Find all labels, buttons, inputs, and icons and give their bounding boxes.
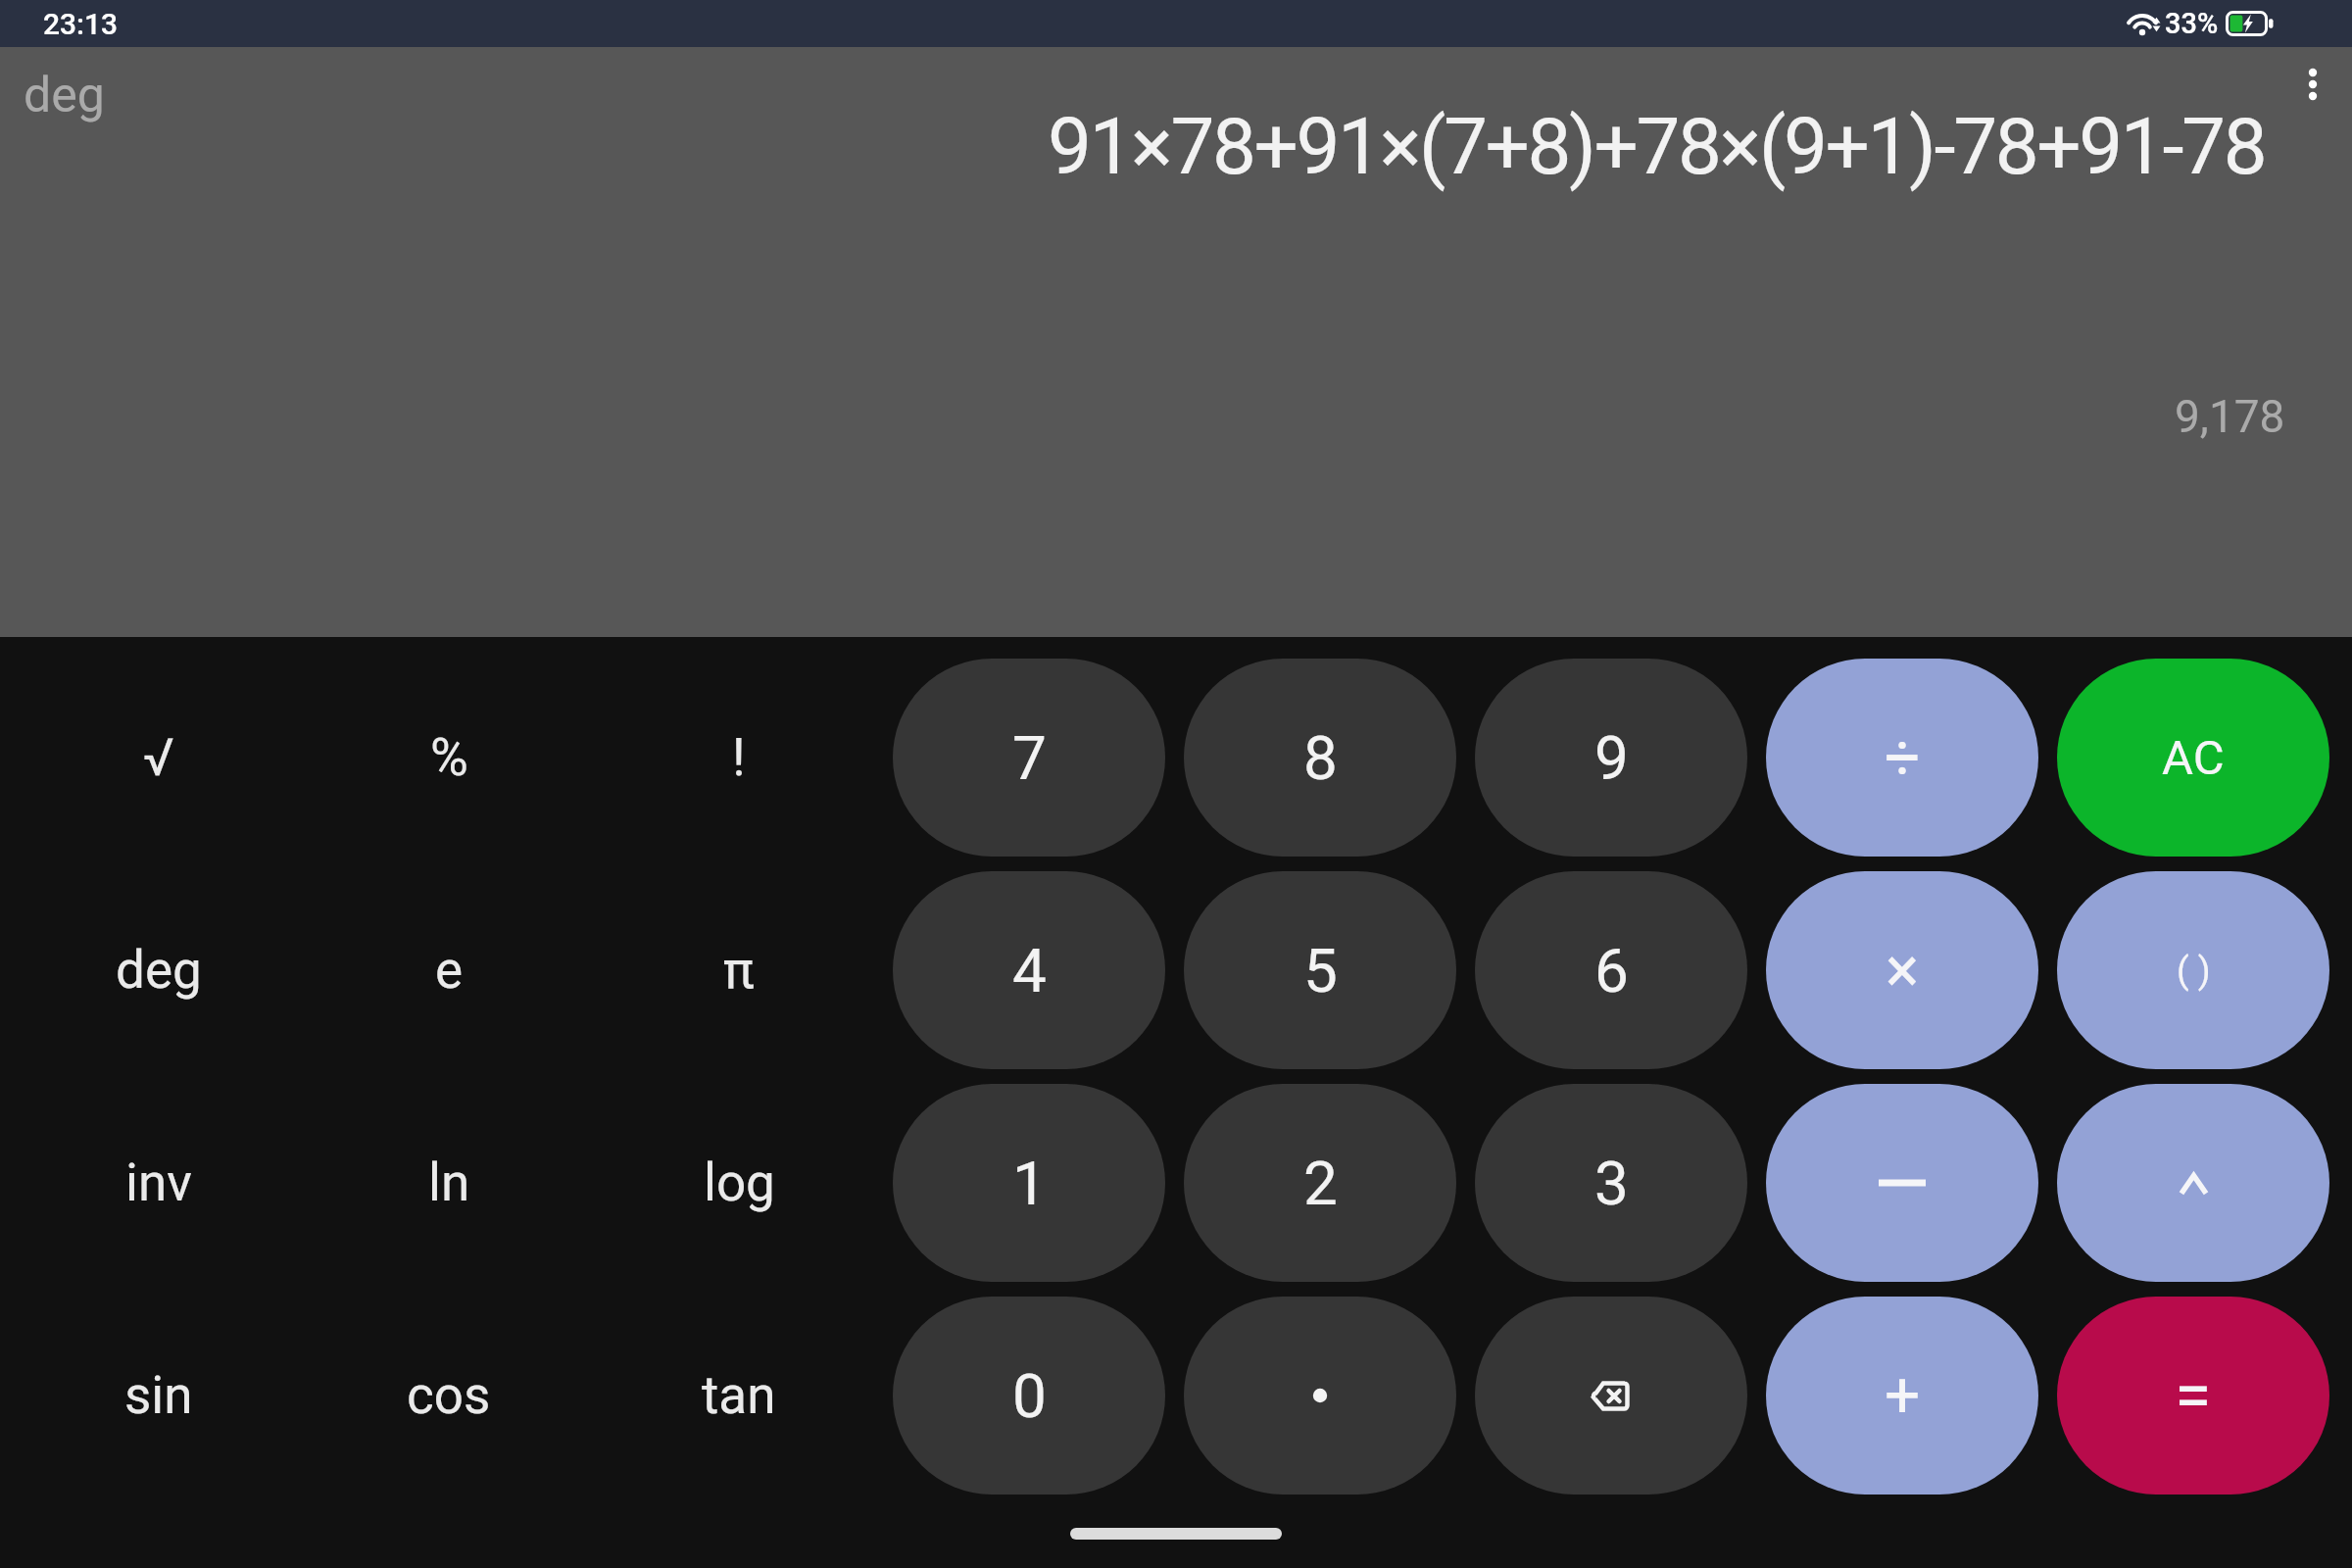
button[interactable]: × xyxy=(1766,871,2038,1069)
button[interactable]: ln xyxy=(304,1076,594,1289)
button[interactable]: = xyxy=(2057,1297,2329,1494)
button[interactable]: 9 xyxy=(1475,659,1747,857)
button[interactable]: AC xyxy=(2057,659,2329,857)
staticText: × xyxy=(1886,934,1920,1007)
staticText: inv xyxy=(125,1152,192,1213)
button[interactable]: cos xyxy=(304,1289,594,1501)
button[interactable]: 7 xyxy=(893,659,1165,857)
button[interactable]: % xyxy=(304,651,594,863)
button[interactable]: e xyxy=(304,863,594,1076)
staticText: deg xyxy=(24,67,105,124)
button[interactable]: 3 xyxy=(1475,1084,1747,1282)
staticText: 3 xyxy=(1594,1148,1629,1219)
staticText: 33% xyxy=(2165,7,2219,40)
staticText: ! xyxy=(732,727,746,788)
staticText: 1 xyxy=(1012,1148,1047,1219)
button[interactable]: 2 xyxy=(1184,1084,1456,1282)
button[interactable]: 8 xyxy=(1184,659,1456,857)
button[interactable]: ( ) xyxy=(2057,871,2329,1069)
staticText: 6 xyxy=(1594,935,1629,1006)
staticText: ln xyxy=(428,1152,470,1213)
button[interactable]: π xyxy=(594,863,884,1076)
button[interactable]: inv xyxy=(14,1076,304,1289)
button[interactable]: 0 xyxy=(893,1297,1165,1494)
button[interactable]: tan xyxy=(594,1289,884,1501)
staticText: 23:13 xyxy=(43,7,119,41)
button[interactable] xyxy=(2057,1084,2329,1282)
button[interactable]: ÷ xyxy=(1766,659,2038,857)
staticText: cos xyxy=(407,1365,491,1426)
button[interactable]: √ xyxy=(14,651,304,863)
staticText: deg xyxy=(116,940,202,1001)
staticText: log xyxy=(704,1152,775,1213)
staticText: 5 xyxy=(1303,935,1338,1006)
staticText: 91×78+91×(7+8)+78×(9+1)-78+91-78 xyxy=(1048,101,2266,193)
button[interactable]: deg xyxy=(14,863,304,1076)
staticText: e xyxy=(435,940,464,1001)
staticText: π xyxy=(723,940,755,1001)
staticText: ÷ xyxy=(1885,721,1921,795)
staticText: 8 xyxy=(1303,722,1338,794)
staticText: AC xyxy=(2162,730,2225,786)
staticText: % xyxy=(430,727,468,788)
button[interactable]: + xyxy=(1766,1297,2038,1494)
button[interactable] xyxy=(2297,63,2328,122)
staticText: 2 xyxy=(1303,1148,1338,1219)
staticText: 4 xyxy=(1012,935,1047,1006)
button[interactable]: 6 xyxy=(1475,871,1747,1069)
button[interactable]: log xyxy=(594,1076,884,1289)
button[interactable]: 5 xyxy=(1184,871,1456,1069)
button[interactable]: 4 xyxy=(893,871,1165,1069)
staticText: 7 xyxy=(1012,722,1047,794)
staticText: 0 xyxy=(1012,1360,1047,1432)
button[interactable]: ! xyxy=(594,651,884,863)
staticText: 9 xyxy=(1594,722,1629,794)
button[interactable] xyxy=(1766,1084,2038,1282)
staticText: tan xyxy=(702,1365,776,1426)
button[interactable] xyxy=(1475,1297,1747,1494)
staticText: 9,178 xyxy=(2175,390,2285,443)
button[interactable]: sin xyxy=(14,1289,304,1501)
button[interactable]: 1 xyxy=(893,1084,1165,1282)
staticText: = xyxy=(2175,1356,2212,1435)
staticText: + xyxy=(1885,1359,1921,1433)
button[interactable] xyxy=(1184,1297,1456,1494)
staticText: √ xyxy=(143,727,174,788)
staticText: ( ) xyxy=(2177,950,2211,992)
staticText: sin xyxy=(124,1365,193,1426)
